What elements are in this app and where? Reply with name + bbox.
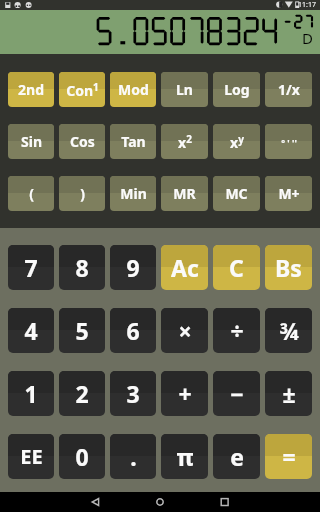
staticText: 0 — [75, 441, 89, 472]
staticText: Cos — [70, 132, 95, 151]
staticText: π — [176, 441, 194, 472]
staticText: 1 — [24, 378, 38, 409]
staticText: x2 — [178, 132, 192, 152]
staticText: Con1 — [66, 80, 99, 100]
button[interactable]: M+ — [265, 176, 312, 211]
button[interactable]: ( — [8, 176, 54, 211]
staticText: ± — [282, 378, 296, 409]
button[interactable]: 7 — [8, 245, 54, 290]
button[interactable]: × — [161, 308, 208, 353]
staticText: Bs — [275, 252, 302, 283]
staticText: ( — [29, 184, 34, 203]
staticText: ÷ — [230, 315, 244, 346]
staticText: 3 — [126, 378, 140, 409]
button[interactable]: 0 — [59, 434, 105, 479]
staticText: Min — [120, 184, 147, 203]
button[interactable]: Ln — [161, 72, 208, 107]
button[interactable]: Recent apps — [214, 492, 320, 512]
button[interactable]: Bs — [265, 245, 312, 290]
button[interactable]: = — [265, 434, 312, 479]
staticText: Ln — [176, 80, 193, 99]
button[interactable]: 3 — [110, 371, 156, 416]
staticText: e — [230, 441, 244, 472]
staticText: xy — [230, 132, 244, 152]
button[interactable]: 5 — [59, 308, 105, 353]
button[interactable]: Mod — [110, 72, 156, 107]
staticText: 4 — [24, 315, 38, 346]
staticText: 7 — [24, 252, 38, 283]
button[interactable]: MR — [161, 176, 208, 211]
button[interactable]: Cos — [59, 124, 105, 159]
staticText: Log — [224, 80, 250, 99]
button[interactable]: xy — [213, 124, 260, 159]
staticText: EE — [20, 443, 43, 470]
button[interactable]: ¾ — [265, 308, 312, 353]
staticText: M+ — [278, 184, 300, 203]
staticText: × — [178, 315, 192, 346]
button[interactable]: ÷ — [213, 308, 260, 353]
button[interactable]: ± — [265, 371, 312, 416]
button[interactable]: 8 — [59, 245, 105, 290]
button[interactable]: Degrees minutes seconds — [265, 124, 312, 159]
staticText: MR — [173, 184, 196, 203]
staticText: ) — [80, 184, 85, 203]
staticText: Mod — [118, 80, 149, 99]
button[interactable]: Back — [0, 492, 107, 512]
button[interactable]: Min — [110, 176, 156, 211]
staticText: MC — [225, 184, 248, 203]
staticText: ° ' '' — [281, 136, 297, 148]
button[interactable]: 2 — [59, 371, 105, 416]
staticText: 11:17 — [298, 0, 316, 10]
staticText: 2nd — [18, 80, 44, 99]
staticText: Ac — [171, 252, 199, 283]
button[interactable]: 2nd — [8, 72, 54, 107]
staticText: D — [302, 28, 313, 48]
staticText: − — [230, 378, 244, 409]
staticText: Tan — [121, 132, 146, 151]
staticText: ¾ — [279, 315, 299, 346]
button[interactable]: Home — [107, 492, 214, 512]
button[interactable]: e — [213, 434, 260, 479]
staticText: 9 — [126, 252, 140, 283]
staticText: + — [178, 378, 192, 409]
staticText: 5 — [75, 315, 89, 346]
staticText: Sin — [21, 132, 42, 151]
button[interactable]: EE — [8, 434, 54, 479]
button[interactable]: Tan — [110, 124, 156, 159]
staticText: 8 — [75, 252, 89, 283]
button[interactable]: 6 — [110, 308, 156, 353]
staticText: C — [229, 252, 244, 283]
button[interactable]: π — [161, 434, 208, 479]
button[interactable]: Sin — [8, 124, 54, 159]
staticText: = — [282, 441, 296, 472]
button[interactable]: − — [213, 371, 260, 416]
button[interactable]: + — [161, 371, 208, 416]
staticText: 1/x — [278, 80, 300, 99]
button[interactable]: 9 — [110, 245, 156, 290]
button[interactable]: Con1 — [59, 72, 105, 107]
button[interactable]: MC — [213, 176, 260, 211]
button[interactable]: Log — [213, 72, 260, 107]
staticText: . — [130, 441, 137, 472]
button[interactable]: ) — [59, 176, 105, 211]
button[interactable]: . — [110, 434, 156, 479]
button[interactable]: C — [213, 245, 260, 290]
button[interactable]: x2 — [161, 124, 208, 159]
button[interactable]: Ac — [161, 245, 208, 290]
button[interactable]: 1/x — [265, 72, 312, 107]
button[interactable]: 4 — [8, 308, 54, 353]
button[interactable]: 1 — [8, 371, 54, 416]
staticText: 2 — [75, 378, 89, 409]
staticText: 6 — [126, 315, 140, 346]
